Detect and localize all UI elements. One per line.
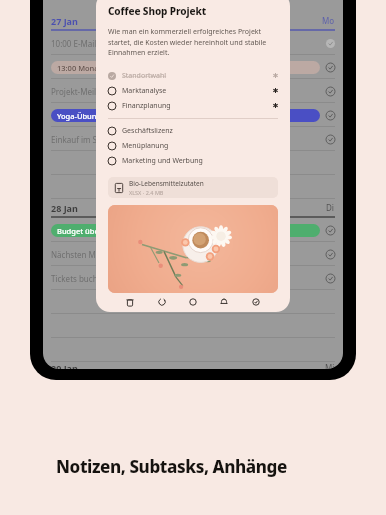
button[interactable]: Status xyxy=(184,293,202,311)
staticText: Yoga-Übung xyxy=(57,111,102,121)
button[interactable]: Bio-Lebensmittelzutaten xyxy=(108,177,278,198)
button[interactable]: Yoga-Übung xyxy=(43,103,343,127)
button[interactable]: Standortwahl xyxy=(108,68,278,83)
button[interactable]: Marketing und Werbung xyxy=(108,153,278,168)
staticText: Menüplanung xyxy=(122,141,278,151)
button[interactable]: Nächsten Monat planen xyxy=(43,242,343,266)
button[interactable]: Projekt-Meilenstein prüfen xyxy=(43,79,343,103)
staticText: 10:00 E-Mails beantworten xyxy=(51,38,320,49)
staticText: Coffee Shop Projekt xyxy=(108,4,207,18)
button[interactable]: Geschäftslizenz xyxy=(108,123,278,138)
button[interactable]: 10:00 E-Mails beantworten xyxy=(43,31,343,55)
staticText: Standortwahl xyxy=(122,71,273,81)
button[interactable]: Marktanalyse xyxy=(108,83,278,98)
staticText: Marketing und Werbung xyxy=(122,156,278,166)
button[interactable]: Menüplanung xyxy=(108,138,278,153)
button[interactable]: Erinnerung xyxy=(215,293,233,311)
staticText: Einkauf im Supermarkt xyxy=(51,134,320,145)
staticText: Notizen, Subtasks, Anhänge xyxy=(56,455,287,478)
staticText: Budget überprüfen xyxy=(57,226,127,236)
button[interactable]: Budget überprüfen xyxy=(43,218,343,242)
staticText: 13:00 Monatsabschluss xyxy=(57,63,141,73)
button[interactable]: Foto-Anhang xyxy=(108,205,278,293)
staticText: Finanzplanung xyxy=(122,101,273,111)
button[interactable]: Erledigt xyxy=(247,293,265,311)
staticText: 29 Jan xyxy=(51,362,78,369)
button[interactable]: 13:00 Monatsabschluss xyxy=(43,55,343,79)
staticText: Tickets buchen xyxy=(51,273,320,284)
staticText: Mi xyxy=(325,362,335,369)
staticText: Mo xyxy=(322,15,335,26)
button[interactable]: Wiederholen xyxy=(153,293,171,311)
button[interactable]: Einkauf im Supermarkt xyxy=(43,127,343,151)
staticText: Nächsten Monat planen xyxy=(51,249,320,260)
button[interactable]: Finanzplanung xyxy=(108,98,278,113)
button[interactable]: Löschen xyxy=(121,293,139,311)
staticText: XLSX · 2.4 MB xyxy=(129,189,164,196)
button[interactable]: Tickets buchen xyxy=(43,266,343,290)
staticText: 27 Jan xyxy=(51,15,78,27)
staticText: Di xyxy=(326,202,335,213)
staticText: Geschäftslizenz xyxy=(122,126,278,136)
staticText: Wie man ein kommerziell erfolgreiches Pr… xyxy=(108,27,278,57)
staticText: 28 Jan xyxy=(51,202,78,214)
staticText: Projekt-Meilenstein prüfen xyxy=(51,86,320,97)
staticText: Bio-Lebensmittelzutaten xyxy=(129,179,204,188)
staticText: Marktanalyse xyxy=(122,86,273,96)
